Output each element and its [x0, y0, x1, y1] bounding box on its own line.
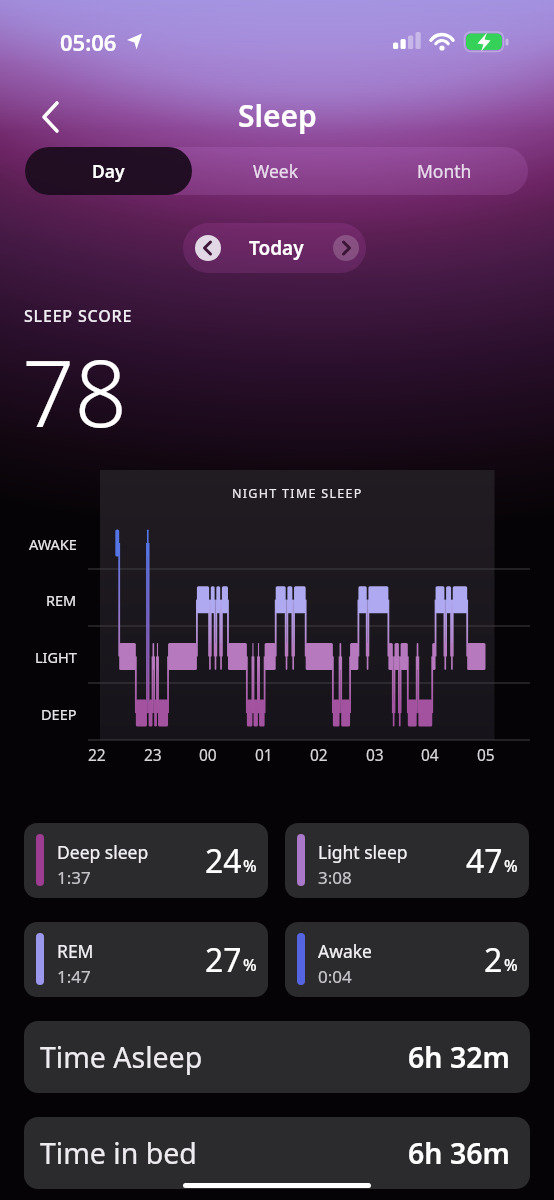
staticText: 05	[477, 744, 495, 765]
staticText: 0:04	[318, 965, 352, 988]
staticText: 05:06	[60, 27, 117, 57]
staticText: DEEP	[41, 704, 77, 724]
staticText: Sleep	[238, 95, 317, 136]
staticText: 03	[366, 744, 384, 765]
staticText: 6h 32m	[408, 1038, 510, 1077]
button[interactable]: Month	[360, 147, 528, 195]
staticText: %	[243, 954, 257, 976]
staticText: REM	[46, 590, 77, 610]
staticText: 1:37	[57, 866, 91, 889]
staticText: 22	[88, 744, 106, 765]
staticText: AWAKE	[29, 534, 77, 554]
button[interactable]: Time Asleep	[24, 1021, 530, 1093]
staticText: 6h 36m	[408, 1134, 510, 1173]
staticText: 04	[421, 744, 439, 765]
button[interactable]: Deep sleep	[24, 823, 268, 898]
button[interactable]	[333, 235, 359, 261]
staticText: 01	[255, 744, 273, 765]
staticText: %	[243, 855, 257, 877]
staticText: Awake	[318, 939, 372, 963]
staticText: %	[504, 855, 518, 877]
button[interactable]: REM	[24, 922, 268, 997]
staticText: 1:47	[57, 965, 91, 988]
button[interactable]: Week	[192, 147, 360, 195]
staticText: 24	[205, 839, 242, 883]
staticText: Today	[249, 235, 304, 261]
staticText: Light sleep	[318, 840, 408, 864]
button[interactable]: Day	[25, 147, 192, 195]
staticText: LIGHT	[35, 647, 77, 667]
staticText: REM	[57, 939, 94, 963]
staticText: 02	[310, 744, 328, 765]
button[interactable]	[30, 100, 64, 134]
button[interactable]: Awake	[285, 922, 529, 997]
staticText: 3:08	[318, 866, 352, 889]
staticText: SLEEP SCORE	[24, 305, 133, 327]
staticText: 47	[466, 839, 503, 883]
button[interactable]	[195, 235, 221, 261]
button[interactable]: Light sleep	[285, 823, 529, 898]
staticText: 27	[205, 938, 242, 982]
staticText: Deep sleep	[57, 840, 149, 864]
staticText: 78	[22, 329, 128, 454]
staticText: 23	[144, 744, 162, 765]
staticText: Time in bed	[40, 1134, 197, 1173]
staticText: %	[504, 954, 518, 976]
staticText: Time Asleep	[40, 1038, 203, 1077]
staticText: 2	[484, 938, 503, 982]
staticText: NIGHT TIME SLEEP	[232, 485, 363, 502]
staticText: Month	[417, 159, 472, 183]
button[interactable]: Time in bed	[24, 1117, 530, 1189]
staticText: Day	[92, 159, 125, 183]
staticText: Week	[253, 159, 299, 183]
staticText: 00	[199, 744, 217, 765]
